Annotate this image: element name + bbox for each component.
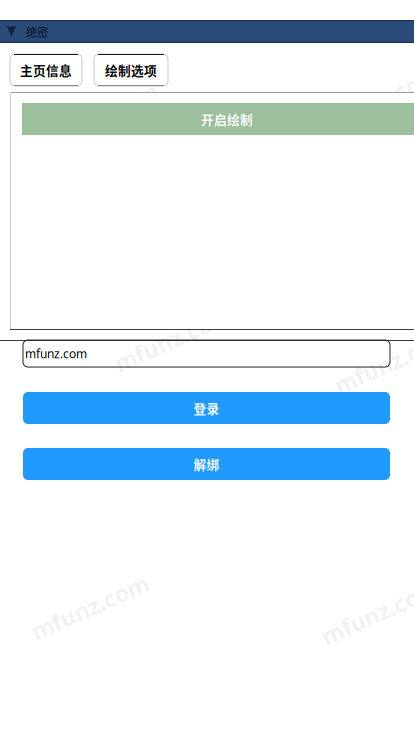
staticText: 解绑 <box>193 455 219 473</box>
button[interactable]: 开启绘制 <box>22 103 414 135</box>
staticText: mfunz.com <box>110 324 236 354</box>
staticText: mfunz.com <box>317 597 414 627</box>
button[interactable]: 绘制选项 <box>94 54 168 86</box>
staticText: mfunz.com <box>318 84 414 114</box>
staticText: 绘制选项 <box>105 61 157 79</box>
button[interactable]: 主页信息 <box>10 54 82 86</box>
staticText: 开启绘制 <box>201 110 253 128</box>
button[interactable]: mfunz.com <box>23 340 390 367</box>
staticText: 主页信息 <box>20 61 72 79</box>
staticText: mfunz.com <box>27 592 153 622</box>
staticText: mfunz.com <box>36 100 162 130</box>
staticText: 登录 <box>193 399 219 417</box>
staticText: mfunz.com <box>330 346 414 376</box>
staticText: mfunz.com <box>25 345 87 361</box>
button[interactable]: 解绑 <box>23 448 390 480</box>
button[interactable]: 登录 <box>23 392 390 424</box>
staticText: 绝密 <box>26 23 48 40</box>
